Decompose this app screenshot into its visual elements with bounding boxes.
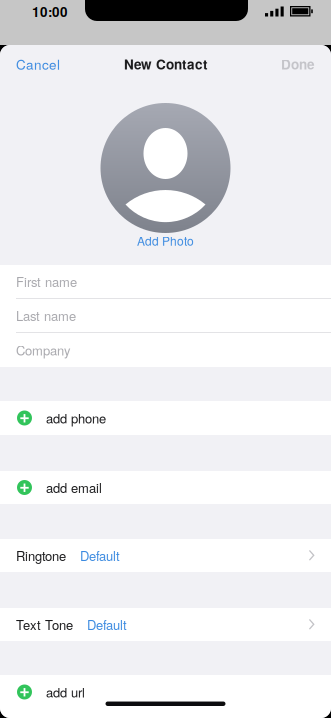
staticText: add url bbox=[46, 683, 85, 701]
button[interactable]: Text Tone bbox=[0, 608, 331, 641]
staticText: Default bbox=[87, 615, 127, 634]
button[interactable]: Ringtone bbox=[0, 539, 331, 572]
staticText: Text Tone bbox=[16, 615, 73, 634]
staticText: Done bbox=[281, 54, 315, 74]
staticText: add phone bbox=[46, 409, 106, 427]
staticText: Company bbox=[16, 341, 71, 359]
button[interactable]: add url bbox=[0, 675, 331, 709]
staticText: Cancel bbox=[16, 54, 60, 74]
button[interactable]: Cancel bbox=[0, 45, 72, 83]
button[interactable]: add email bbox=[0, 471, 331, 504]
staticText: First name bbox=[16, 272, 77, 291]
staticText: add email bbox=[46, 478, 102, 497]
staticText: Default bbox=[80, 546, 120, 565]
button[interactable]: Add Photo bbox=[127, 229, 204, 252]
staticText: 10:00 bbox=[32, 2, 68, 21]
staticText: Ringtone bbox=[16, 546, 66, 565]
button[interactable]: Done bbox=[269, 45, 331, 83]
staticText: New Contact bbox=[124, 54, 207, 74]
staticText: Add Photo bbox=[137, 232, 194, 249]
staticText: Last name bbox=[16, 306, 76, 325]
button[interactable]: add phone bbox=[0, 401, 331, 435]
